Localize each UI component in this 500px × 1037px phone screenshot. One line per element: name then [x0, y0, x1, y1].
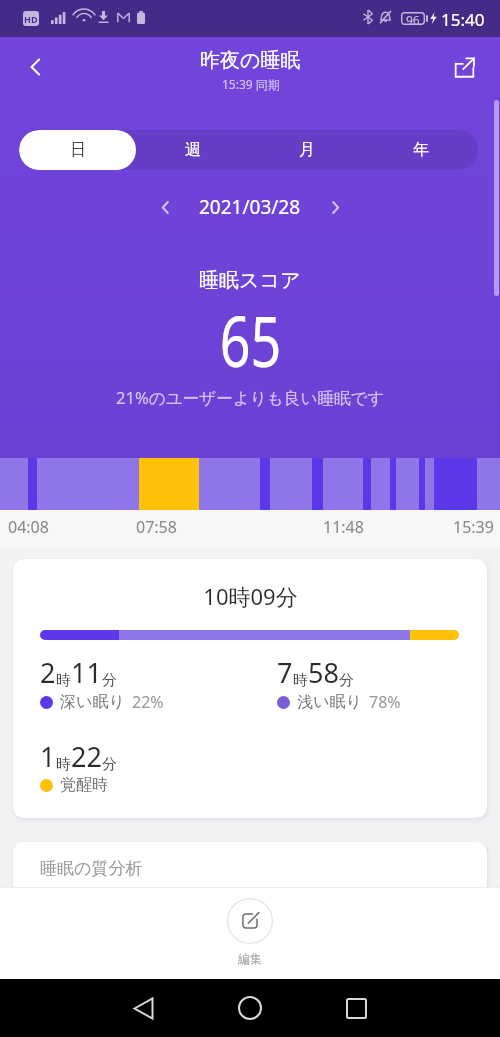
staticText: 15:40 — [441, 8, 485, 31]
staticText: 時 — [56, 671, 71, 690]
staticText: 年 — [413, 140, 429, 160]
staticText: 11 — [71, 654, 102, 691]
staticText: 時 — [56, 755, 71, 774]
button[interactable]: 週 — [136, 130, 250, 170]
staticText: 07:58 — [136, 516, 177, 538]
staticText: 58 — [308, 654, 339, 691]
staticText: 22 — [71, 738, 102, 775]
staticText: 週 — [185, 140, 201, 160]
button[interactable]: Home — [226, 984, 274, 1032]
button[interactable]: Back — [14, 45, 58, 89]
staticText: 深い眠り — [60, 692, 125, 712]
staticText: 分 — [102, 671, 117, 690]
staticText: 21%のユーザーよりも良い睡眠です — [116, 386, 385, 409]
staticText: 時 — [293, 671, 308, 690]
staticText: 22% — [132, 691, 164, 713]
staticText: 78% — [369, 691, 401, 713]
button[interactable]: 年 — [364, 130, 478, 170]
button[interactable]: 日 — [19, 130, 136, 170]
staticText: 10時09分 — [203, 581, 298, 611]
staticText: 分 — [102, 755, 117, 774]
staticText: 編集 — [238, 951, 262, 966]
button[interactable]: Previous day — [147, 189, 183, 225]
button[interactable]: 10時09分 — [13, 559, 487, 818]
staticText: 11:48 — [323, 516, 364, 538]
staticText: 96 — [406, 12, 420, 28]
staticText: 分 — [339, 671, 354, 690]
staticText: 04:08 — [8, 516, 49, 538]
staticText: HD — [24, 13, 38, 25]
staticText: 睡眠の質分析 — [40, 858, 143, 879]
button[interactable]: Recents — [332, 984, 380, 1032]
staticText: 覚醒時 — [60, 775, 108, 795]
staticText: 7 — [277, 654, 293, 691]
staticText: 浅い眠り — [297, 692, 362, 712]
button[interactable]: Share — [442, 45, 486, 89]
staticText: 日 — [70, 140, 86, 160]
staticText: 2 — [40, 654, 56, 691]
staticText: 15:39 同期 — [222, 76, 280, 92]
staticText: 月 — [299, 140, 315, 160]
button[interactable]: 睡眠の質分析 — [13, 842, 487, 912]
staticText: 15:39 — [453, 516, 494, 538]
button[interactable]: 月 — [250, 130, 364, 170]
staticText: 65 — [220, 293, 281, 387]
button[interactable]: 編集 — [227, 898, 273, 966]
button[interactable]: Back — [119, 984, 167, 1032]
staticText: 昨夜の睡眠 — [200, 48, 301, 73]
staticText: 2021/03/28 — [199, 194, 301, 220]
staticText: 睡眠スコア — [199, 268, 301, 293]
button[interactable]: Next day — [317, 189, 353, 225]
staticText: 1 — [40, 738, 56, 775]
